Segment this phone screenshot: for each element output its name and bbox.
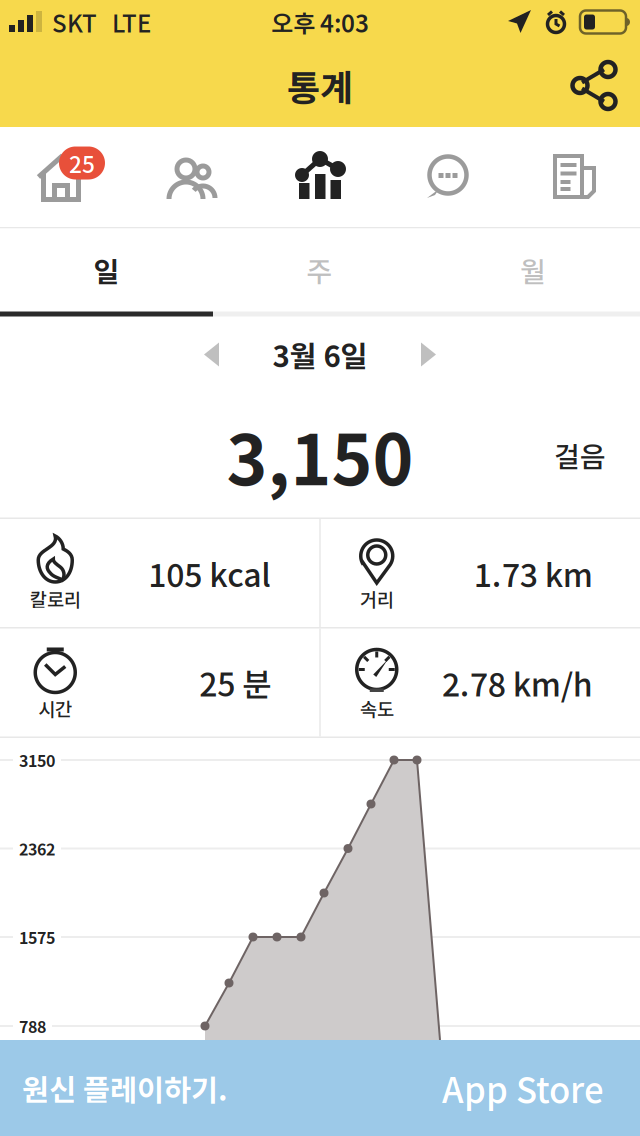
staticText: 3,150	[226, 405, 413, 505]
staticText: 오후 4:03	[271, 5, 369, 39]
button[interactable]: 통계	[256, 127, 384, 227]
staticText: SKT LTE	[52, 5, 151, 39]
staticText: 일	[93, 250, 119, 290]
staticText: 25	[69, 147, 95, 179]
staticText: 통계	[287, 59, 353, 111]
staticText: 788	[19, 1014, 46, 1038]
button[interactable]: 원신 플레이하기.	[0, 1040, 640, 1136]
staticText: 거리	[360, 585, 394, 612]
button[interactable]: 뉴스	[512, 127, 640, 227]
staticText: 25 분	[199, 659, 271, 706]
staticText: 2.78 km/h	[442, 659, 593, 706]
staticText: 3월 6일	[272, 333, 367, 376]
staticText: 속도	[360, 694, 394, 721]
button[interactable]: 공유	[558, 49, 630, 121]
staticText: 1575	[19, 925, 55, 949]
staticText: App Store	[442, 1063, 604, 1113]
staticText: 2362	[19, 837, 55, 860]
staticText: 주	[306, 250, 332, 290]
staticText: 1.73 km	[474, 550, 593, 596]
staticText: 3150	[19, 748, 55, 772]
staticText: 칼로리	[30, 585, 81, 612]
button[interactable]: 주	[213, 228, 426, 311]
staticText: 105 kcal	[148, 550, 271, 596]
button[interactable]: 친구	[128, 127, 256, 227]
button[interactable]: 홈	[0, 127, 128, 227]
staticText: 월	[520, 250, 546, 290]
button[interactable]: 채팅	[384, 127, 512, 227]
button[interactable]: 일	[0, 228, 213, 311]
staticText: 걸음	[554, 435, 606, 475]
button[interactable]: 이전	[180, 322, 244, 386]
staticText: 원신 플레이하기.	[22, 1067, 228, 1109]
button[interactable]: 월	[426, 228, 640, 311]
staticText: 시간	[38, 694, 72, 721]
button[interactable]: 다음	[396, 322, 460, 386]
